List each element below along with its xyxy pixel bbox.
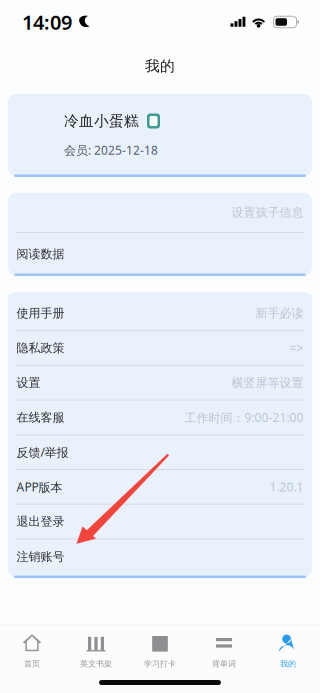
button[interactable]: 首页 bbox=[0, 632, 64, 669]
staticText: 在线客服 bbox=[16, 410, 64, 425]
staticText: 设置孩子信息 bbox=[231, 205, 303, 220]
staticText: 冷血小蛋糕 bbox=[64, 112, 139, 130]
button[interactable]: Edit nickname bbox=[147, 113, 160, 128]
staticText: 我的 bbox=[280, 659, 296, 669]
button[interactable]: 阅读数据 bbox=[8, 233, 312, 275]
staticText: 注销账号 bbox=[16, 549, 64, 564]
button[interactable]: 在线客服 bbox=[8, 401, 312, 435]
staticText: 设置 bbox=[16, 375, 40, 390]
staticText: 反馈/举报 bbox=[16, 444, 68, 460]
staticText: 会员: 2025-12-18 bbox=[64, 142, 158, 158]
staticText: => bbox=[289, 340, 303, 356]
staticText: 14:09 bbox=[22, 9, 72, 35]
button[interactable]: 英文书架 bbox=[64, 632, 128, 669]
staticText: 退出登录 bbox=[16, 514, 64, 529]
button[interactable]: 学习打卡 bbox=[128, 632, 192, 669]
staticText: 背单词 bbox=[212, 659, 236, 669]
button[interactable]: APP版本 bbox=[8, 470, 312, 505]
button[interactable]: 反馈/举报 bbox=[8, 435, 312, 470]
staticText: 1.20.1 bbox=[269, 479, 303, 495]
button[interactable]: 退出登录 bbox=[8, 505, 312, 539]
button[interactable]: 设置孩子信息 bbox=[8, 193, 312, 233]
staticText: 我的 bbox=[145, 57, 175, 75]
staticText: 阅读数据 bbox=[16, 247, 64, 261]
button[interactable]: 注销账号 bbox=[8, 539, 312, 574]
button[interactable]: 背单词 bbox=[192, 632, 256, 669]
staticText: 使用手册 bbox=[16, 306, 64, 321]
staticText: 工作时间：9:00-21:00 bbox=[184, 409, 303, 425]
staticText: 隐私政策 bbox=[16, 341, 64, 355]
button[interactable]: 我的 bbox=[256, 632, 320, 669]
staticText: 横竖屏等设置 bbox=[231, 375, 303, 390]
button[interactable]: 隐私政策 bbox=[8, 331, 312, 366]
button[interactable]: 设置 bbox=[8, 366, 312, 401]
staticText: 新手必读 bbox=[255, 306, 303, 321]
staticText: 英文书架 bbox=[80, 659, 112, 669]
staticText: 首页 bbox=[24, 659, 40, 669]
staticText: 学习打卡 bbox=[144, 659, 176, 669]
button[interactable]: 使用手册 bbox=[8, 296, 312, 331]
staticText: APP版本 bbox=[16, 479, 62, 495]
